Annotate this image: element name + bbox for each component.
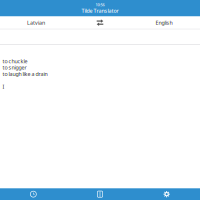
- button[interactable]: to laugh like a drain: [2, 71, 200, 77]
- button[interactable]: I: [2, 83, 200, 90]
- staticText: to chuckle: [2, 58, 27, 65]
- button[interactable]: to chuckle: [2, 58, 200, 64]
- button[interactable]: Swap languages: [72, 16, 128, 29]
- button[interactable]: Settings: [133, 188, 200, 200]
- staticText: 10:56: [95, 2, 104, 7]
- staticText: to laugh like a drain: [2, 70, 47, 77]
- staticText: I: [2, 83, 4, 90]
- button[interactable]: Latvian: [0, 16, 72, 29]
- button[interactable]: to snigger: [2, 64, 200, 71]
- staticText: to snigger: [2, 64, 26, 71]
- button[interactable]: Dictionary: [67, 188, 133, 200]
- button[interactable]: English: [128, 16, 200, 29]
- staticText: Latvian: [27, 19, 45, 26]
- staticText: Tilde Translator: [81, 7, 118, 14]
- staticText: English: [155, 19, 172, 26]
- button[interactable]: History: [0, 188, 67, 200]
